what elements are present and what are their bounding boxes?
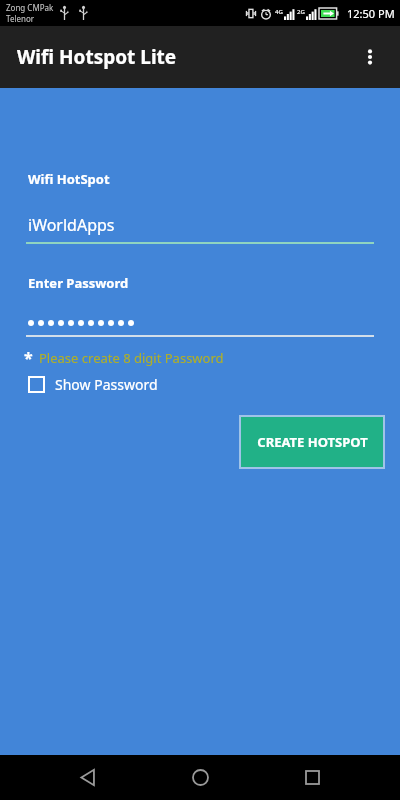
- staticText: Wifi Hotspot Lite: [17, 44, 177, 70]
- button[interactable]: Back: [64, 755, 112, 800]
- staticText: CREATE HOTSPOT: [257, 433, 368, 451]
- button[interactable]: Show Password: [28, 375, 158, 394]
- button[interactable]: CREATE HOTSPOT: [241, 417, 383, 467]
- staticText: iWorldApps: [28, 214, 115, 236]
- staticText: Wifi HotSpot: [28, 170, 110, 188]
- staticText: Please create 8 digit Password: [39, 349, 224, 367]
- staticText: 2G: [297, 8, 305, 16]
- staticText: *: [24, 347, 33, 369]
- button[interactable]: Home: [176, 755, 224, 800]
- staticText: Enter Password: [28, 274, 129, 292]
- staticText: Show Password: [55, 375, 158, 394]
- button[interactable]: More options: [348, 35, 392, 79]
- staticText: 12:50 PM: [347, 6, 395, 21]
- staticText: Telenor: [6, 13, 35, 24]
- staticText: 4G: [275, 8, 283, 16]
- button[interactable]: [26, 320, 374, 337]
- staticText: Zong CMPak: [6, 2, 54, 13]
- button[interactable]: Recent apps: [288, 755, 336, 800]
- button[interactable]: iWorldApps: [26, 214, 374, 244]
